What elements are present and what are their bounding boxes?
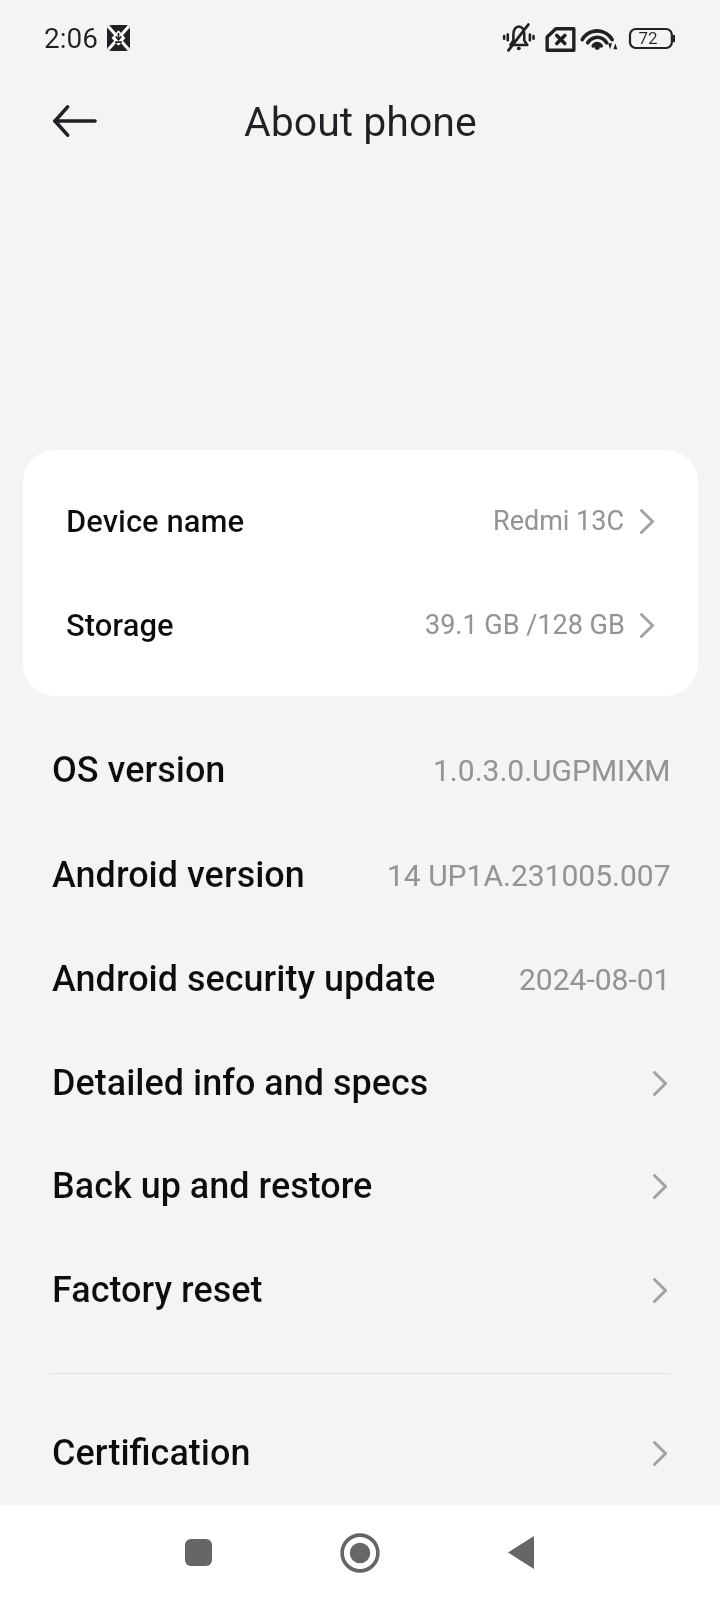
button[interactable]: Back	[461, 1505, 581, 1600]
staticText: Device name	[66, 503, 244, 539]
button[interactable]: Storage	[23, 574, 698, 676]
staticText: Storage	[66, 607, 174, 643]
staticText: 14 UP1A.231005.007	[387, 858, 671, 893]
staticText: Redmi 13C	[493, 505, 625, 537]
button[interactable]: Certification	[0, 1401, 720, 1505]
staticText: Factory reset	[52, 1269, 263, 1311]
button[interactable]: OS version	[0, 718, 720, 822]
staticText: About phone	[244, 98, 477, 146]
staticText: Back up and restore	[52, 1165, 373, 1207]
button[interactable]: Back up and restore	[0, 1134, 720, 1238]
button[interactable]: Detailed info and specs	[0, 1031, 720, 1135]
button[interactable]: Home	[300, 1505, 420, 1600]
staticText: 72	[627, 28, 669, 48]
button[interactable]: Recents	[138, 1505, 258, 1600]
staticText: Android security update	[52, 958, 436, 1000]
button[interactable]: Android security update	[0, 927, 720, 1031]
staticText: 39.1 GB /128 GB	[425, 609, 625, 641]
staticText: 1.0.3.0.UGPMIXM	[433, 753, 671, 788]
button[interactable]: Device name	[23, 470, 698, 572]
staticText: Android version	[52, 854, 305, 896]
button[interactable]: Back	[40, 87, 108, 155]
button[interactable]: Android version	[0, 823, 720, 927]
staticText: 2:06	[44, 22, 98, 55]
staticText: 2024-08-01	[519, 962, 671, 997]
staticText: Detailed info and specs	[52, 1062, 429, 1104]
staticText: Certification	[52, 1432, 251, 1474]
button[interactable]: Factory reset	[0, 1238, 720, 1342]
staticText: OS version	[52, 749, 226, 791]
